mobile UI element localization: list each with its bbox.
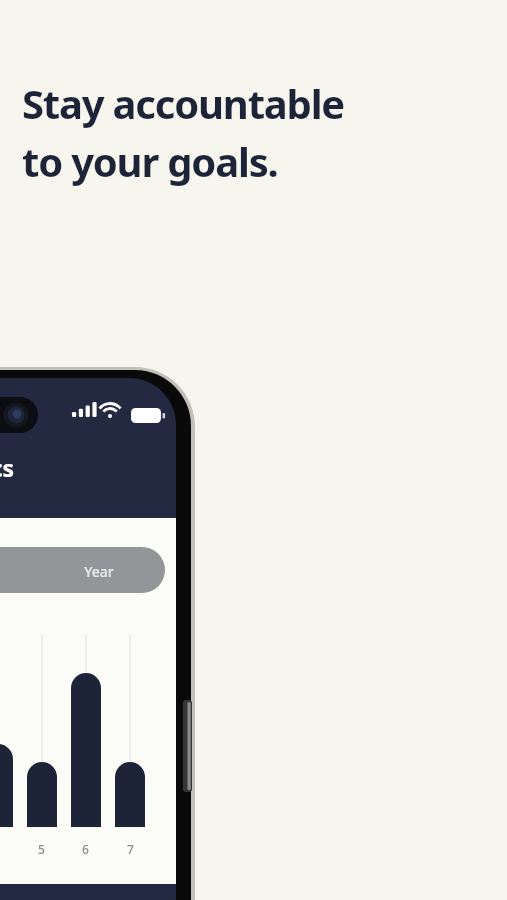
staticText: 7	[127, 841, 134, 857]
staticText: Stay accountable	[22, 76, 345, 130]
button[interactable]: Phone app preview	[0, 0, 507, 900]
staticText: Statistics	[0, 452, 15, 483]
staticText: 5	[38, 841, 45, 857]
staticText: to your goals.	[22, 134, 278, 188]
staticText: Year	[84, 562, 114, 581]
staticText: 6	[82, 841, 89, 857]
